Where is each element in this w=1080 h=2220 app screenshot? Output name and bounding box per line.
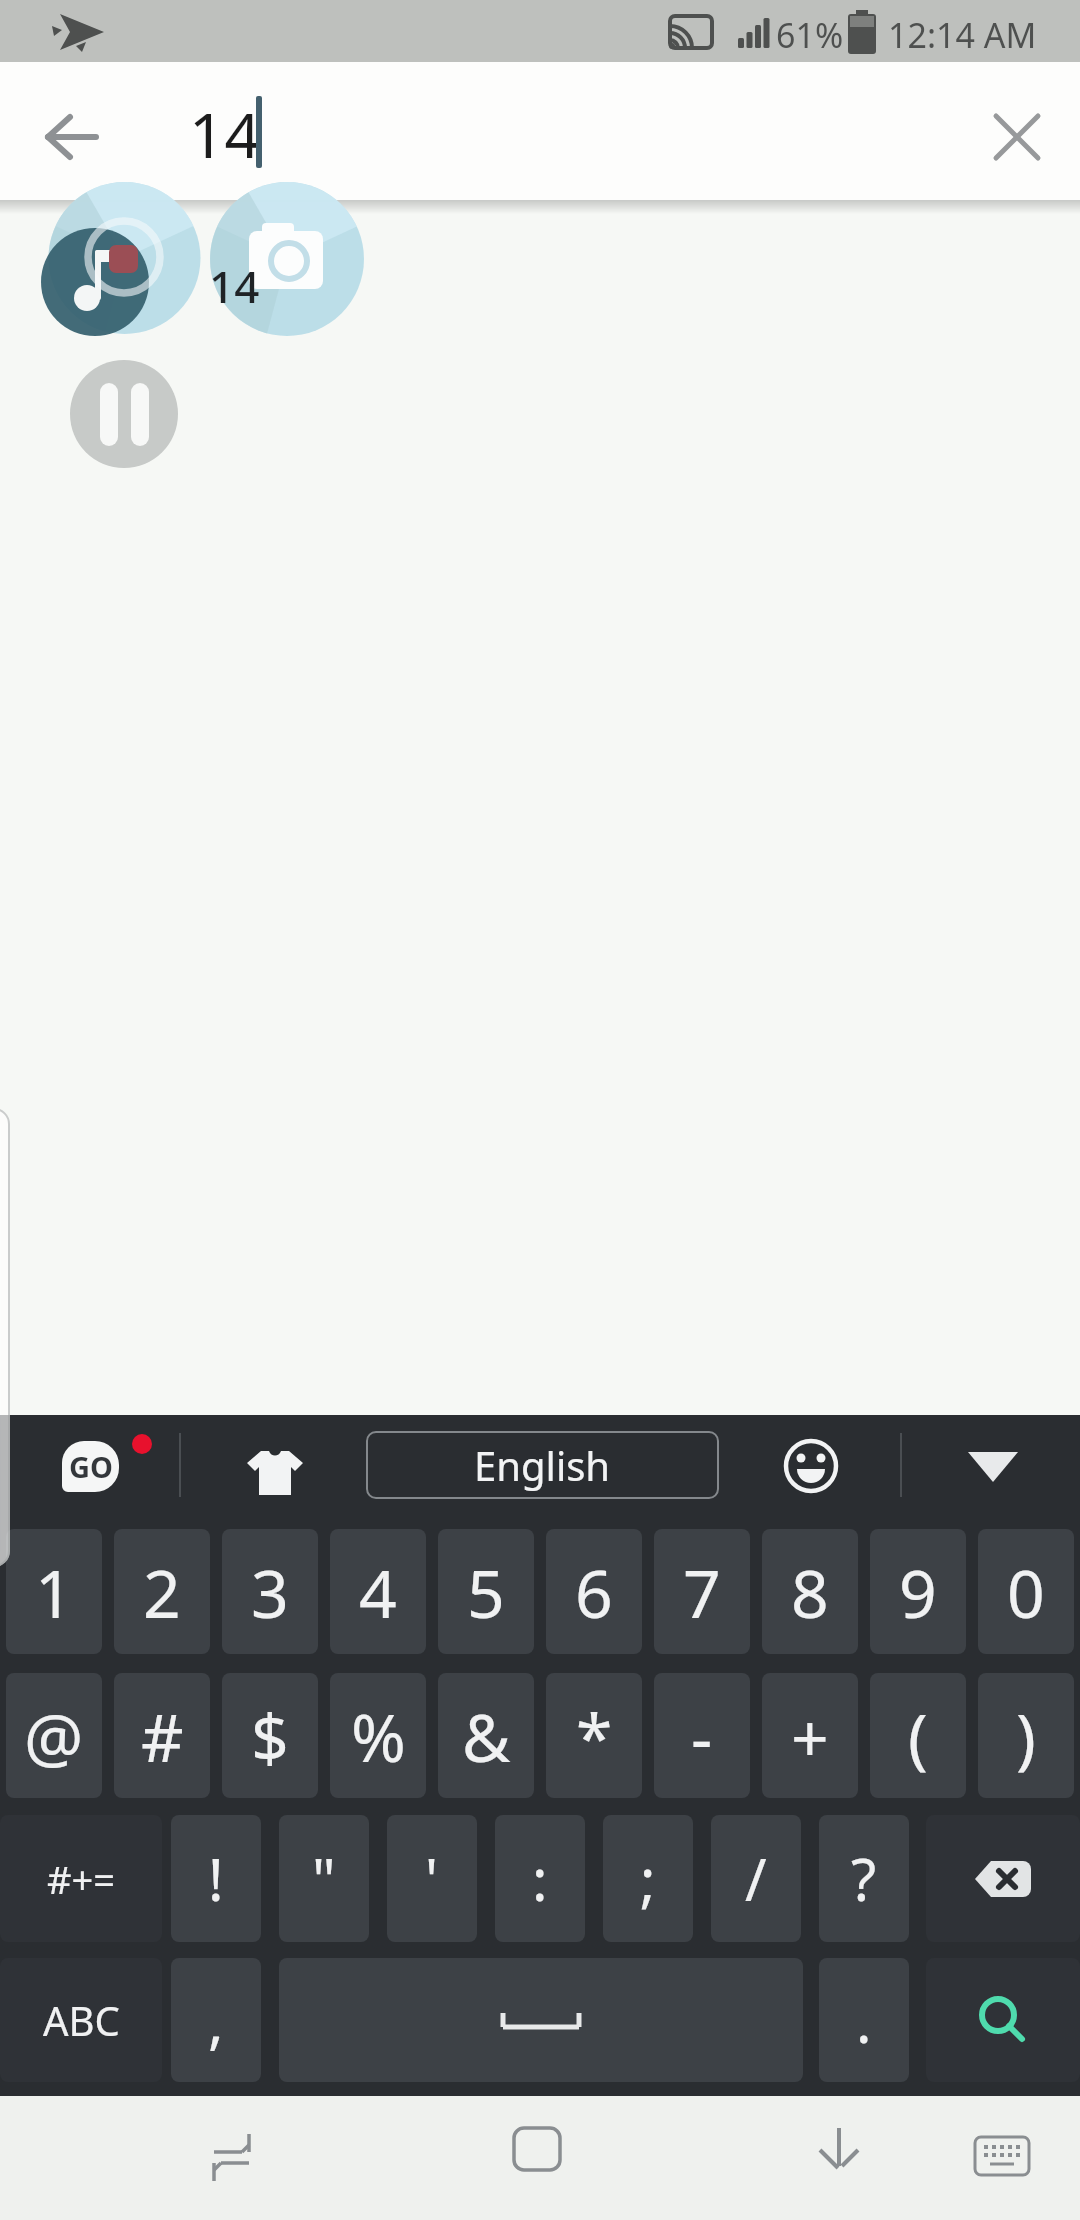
- button[interactable]: [0, 1108, 10, 1567]
- staticText: $: [251, 1691, 289, 1781]
- button[interactable]: [926, 1958, 1080, 2082]
- staticText: /: [745, 1839, 767, 1918]
- staticText: ": [312, 1839, 336, 1918]
- staticText: 5: [467, 1547, 505, 1637]
- staticText: GO: [69, 1447, 113, 1486]
- button[interactable]: [926, 1815, 1080, 1942]
- staticText: 9: [899, 1547, 937, 1637]
- staticText: 8: [791, 1547, 829, 1637]
- staticText: +: [791, 1691, 829, 1781]
- button[interactable]: #: [114, 1673, 210, 1798]
- staticText: %: [351, 1691, 406, 1781]
- button[interactable]: 0: [978, 1529, 1074, 1654]
- button[interactable]: :: [495, 1815, 585, 1942]
- button[interactable]: [812, 2128, 866, 2174]
- staticText: 6: [575, 1547, 613, 1637]
- button[interactable]: [784, 1439, 838, 1493]
- staticText: 0: [1007, 1547, 1045, 1637]
- button[interactable]: ABC: [0, 1958, 162, 2082]
- button[interactable]: English: [366, 1431, 719, 1499]
- button[interactable]: 1: [6, 1529, 102, 1654]
- button[interactable]: GO: [62, 1441, 119, 1492]
- button[interactable]: 9: [870, 1529, 966, 1654]
- button[interactable]: -: [654, 1673, 750, 1798]
- button[interactable]: [512, 2126, 562, 2172]
- staticText: 1: [35, 1547, 73, 1637]
- staticText: 14: [189, 92, 260, 176]
- staticText: ;: [640, 1839, 656, 1918]
- staticText: ABC: [43, 1993, 120, 2047]
- button[interactable]: &: [438, 1673, 534, 1798]
- button[interactable]: ,: [171, 1958, 261, 2082]
- button[interactable]: [966, 1452, 1020, 1484]
- button[interactable]: 8: [762, 1529, 858, 1654]
- staticText: English: [474, 1438, 611, 1492]
- button[interactable]: [969, 89, 1065, 185]
- button[interactable]: .: [819, 1958, 909, 2082]
- staticText: #: [141, 1691, 184, 1781]
- button[interactable]: [206, 2127, 264, 2185]
- button[interactable]: !: [171, 1815, 261, 1942]
- button[interactable]: +: [762, 1673, 858, 1798]
- button[interactable]: [247, 1451, 303, 1495]
- staticText: ,: [208, 1981, 224, 2060]
- staticText: 7: [683, 1547, 721, 1637]
- staticText: 14: [209, 256, 260, 316]
- button[interactable]: ): [978, 1673, 1074, 1798]
- staticText: (: [908, 1691, 928, 1781]
- button[interactable]: $: [222, 1673, 318, 1798]
- button[interactable]: ?: [819, 1815, 909, 1942]
- button[interactable]: ': [387, 1815, 477, 1942]
- button[interactable]: *: [546, 1673, 642, 1798]
- button[interactable]: #+=: [0, 1815, 162, 1942]
- staticText: @: [24, 1691, 84, 1781]
- button[interactable]: /: [711, 1815, 801, 1942]
- button[interactable]: ": [279, 1815, 369, 1942]
- staticText: 4: [359, 1547, 397, 1637]
- staticText: 2: [143, 1547, 181, 1637]
- button[interactable]: [279, 1958, 803, 2082]
- staticText: &: [462, 1691, 511, 1781]
- staticText: ): [1016, 1691, 1036, 1781]
- button[interactable]: @: [6, 1673, 102, 1798]
- button[interactable]: %: [330, 1673, 426, 1798]
- button[interactable]: 2: [114, 1529, 210, 1654]
- staticText: -: [691, 1691, 713, 1781]
- button[interactable]: 6: [546, 1529, 642, 1654]
- staticText: 12:14 AM: [888, 12, 1037, 58]
- staticText: 61%: [776, 12, 844, 58]
- button[interactable]: 7: [654, 1529, 750, 1654]
- staticText: 3: [251, 1547, 289, 1637]
- staticText: ?: [851, 1839, 877, 1918]
- staticText: ': [425, 1839, 439, 1918]
- button[interactable]: [24, 89, 120, 185]
- staticText: .: [856, 1981, 872, 2060]
- button[interactable]: 3: [222, 1529, 318, 1654]
- button[interactable]: 5: [438, 1529, 534, 1654]
- staticText: *: [576, 1691, 613, 1781]
- button[interactable]: (: [870, 1673, 966, 1798]
- staticText: #+=: [47, 1853, 116, 1905]
- button[interactable]: [974, 2136, 1030, 2176]
- staticText: :: [532, 1839, 548, 1918]
- button[interactable]: ;: [603, 1815, 693, 1942]
- staticText: !: [208, 1839, 224, 1918]
- button[interactable]: 4: [330, 1529, 426, 1654]
